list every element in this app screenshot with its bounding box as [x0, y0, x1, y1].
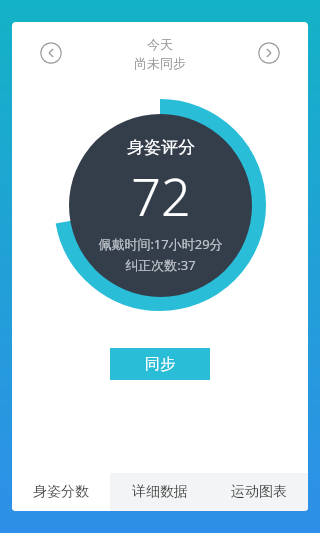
button[interactable]: 身姿评分 [69, 114, 252, 297]
button[interactable]: 身姿分数 [12, 473, 110, 511]
button[interactable]: Next day [258, 42, 280, 64]
staticText: 同步 [145, 355, 175, 374]
staticText: 运动图表 [231, 483, 287, 501]
staticText: 尚未同步 [134, 55, 186, 71]
button[interactable]: Previous day [40, 42, 62, 64]
button[interactable]: 详细数据 [110, 473, 209, 511]
button[interactable]: 运动图表 [209, 473, 308, 511]
staticText: 纠正次数:37 [125, 256, 196, 274]
staticText: 今天 [147, 36, 173, 52]
button[interactable]: 同步 [110, 348, 210, 380]
staticText: 详细数据 [132, 483, 188, 501]
staticText: 72 [131, 160, 191, 231]
staticText: 佩戴时间:17小时29分 [98, 235, 223, 253]
staticText: 身姿评分 [127, 137, 195, 158]
staticText: 身姿分数 [33, 483, 89, 501]
